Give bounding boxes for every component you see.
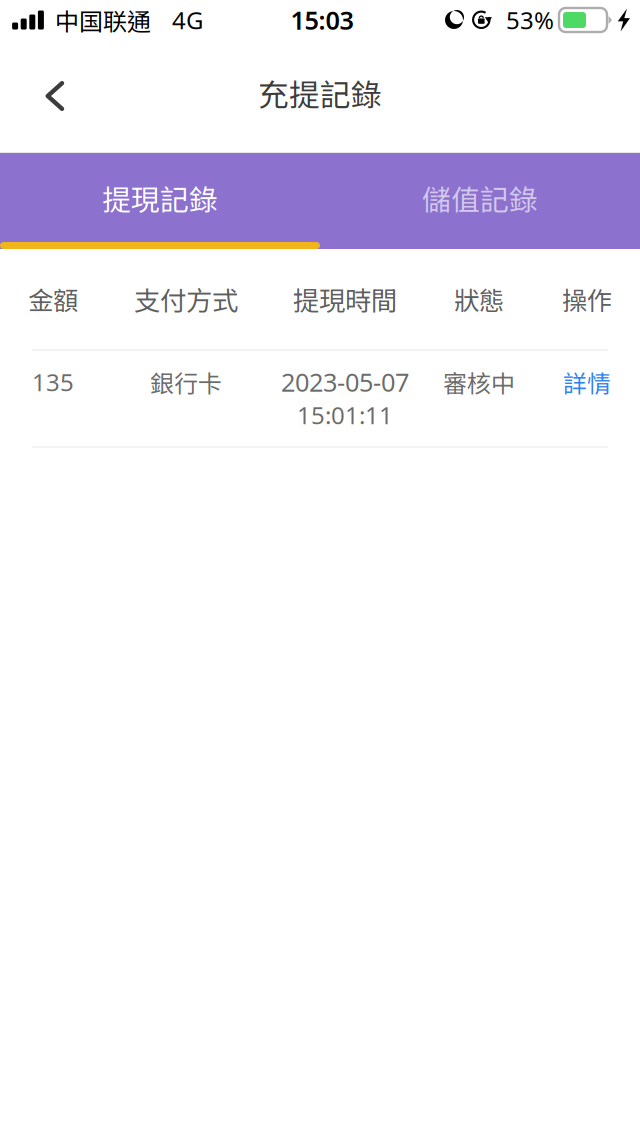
staticText: 4G (172, 4, 203, 36)
button[interactable]: 提現記錄 (0, 153, 320, 249)
button[interactable]: 詳情 (534, 369, 640, 395)
staticText: 審核中 (443, 365, 515, 399)
staticText: 提現時間 (293, 280, 397, 318)
staticText: 135 (32, 366, 74, 398)
staticText: 中国联通 (55, 3, 151, 37)
staticText: 15:01:11 (297, 399, 393, 431)
staticText: 儲值記錄 (422, 177, 538, 219)
staticText: 充提記錄 (258, 71, 382, 115)
staticText: 銀行卡 (150, 365, 222, 399)
staticText: 操作 (562, 281, 612, 317)
staticText: 提現記錄 (102, 177, 218, 219)
staticText: 2023-05-07 (281, 365, 409, 399)
button[interactable]: Back (21, 60, 89, 140)
staticText: 支付方式 (134, 280, 238, 318)
staticText: 詳情 (563, 365, 611, 399)
staticText: 狀態 (454, 281, 504, 317)
staticText: 53% (506, 4, 554, 36)
staticText: 金額 (28, 281, 78, 317)
staticText: 15:03 (290, 3, 353, 37)
button[interactable]: 儲值記錄 (320, 153, 640, 249)
